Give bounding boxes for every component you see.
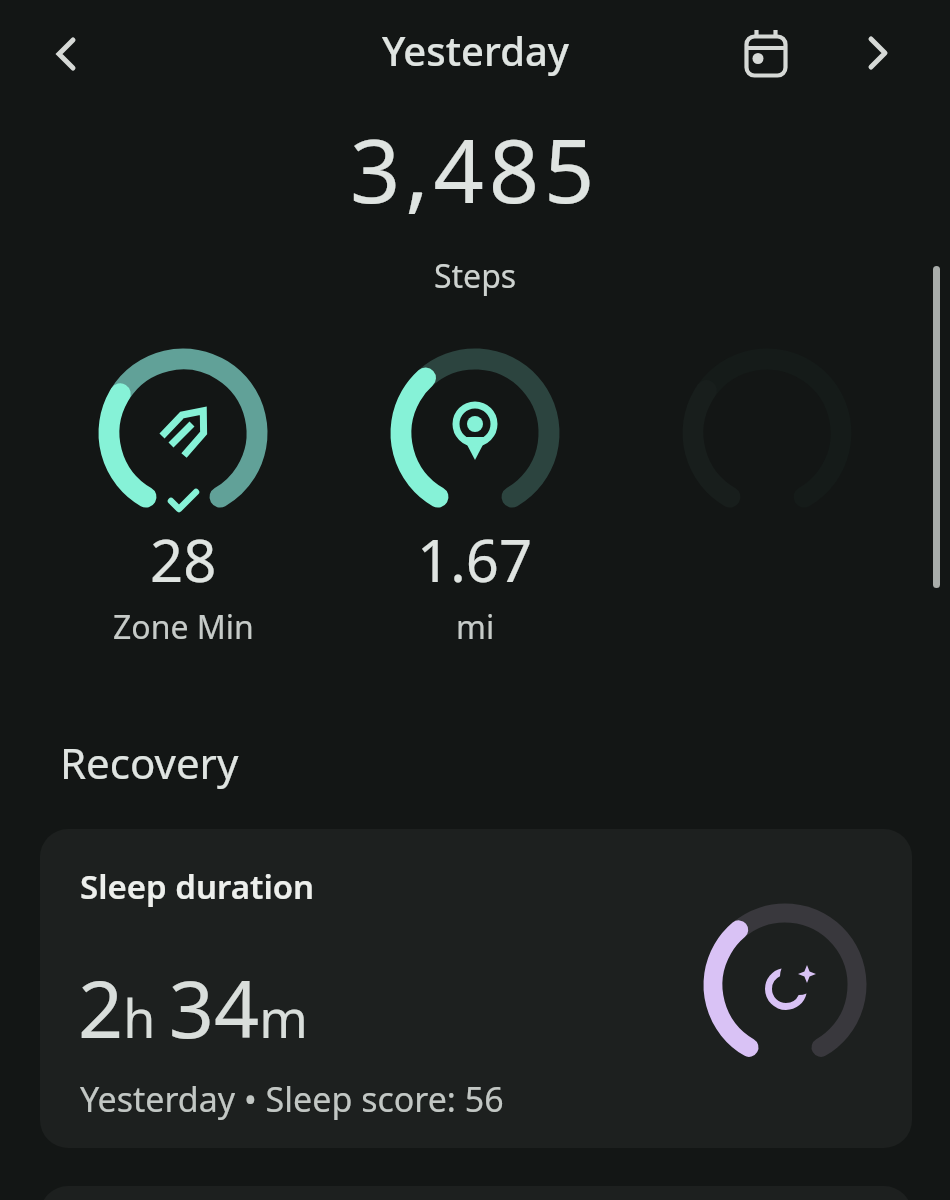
staticText: Steps (434, 254, 517, 298)
staticText: 3,485 (350, 109, 600, 221)
staticText: Yesterday • Sleep score: 56 (80, 1076, 504, 1122)
staticText: Yesterday (382, 23, 569, 77)
staticText: 28 (150, 520, 217, 590)
staticText: 2h 34m (78, 954, 308, 1062)
button[interactable] (88, 338, 278, 528)
button[interactable] (40, 829, 912, 1148)
staticText: 1.67 (417, 520, 533, 590)
staticText: Sleep duration (80, 864, 315, 909)
staticText: mi (456, 605, 495, 649)
button[interactable] (380, 338, 570, 528)
staticText: Recovery (60, 734, 239, 791)
button[interactable] (44, 30, 92, 78)
staticText: Zone Min (113, 605, 254, 649)
button[interactable] (742, 29, 790, 77)
button[interactable] (857, 29, 905, 77)
